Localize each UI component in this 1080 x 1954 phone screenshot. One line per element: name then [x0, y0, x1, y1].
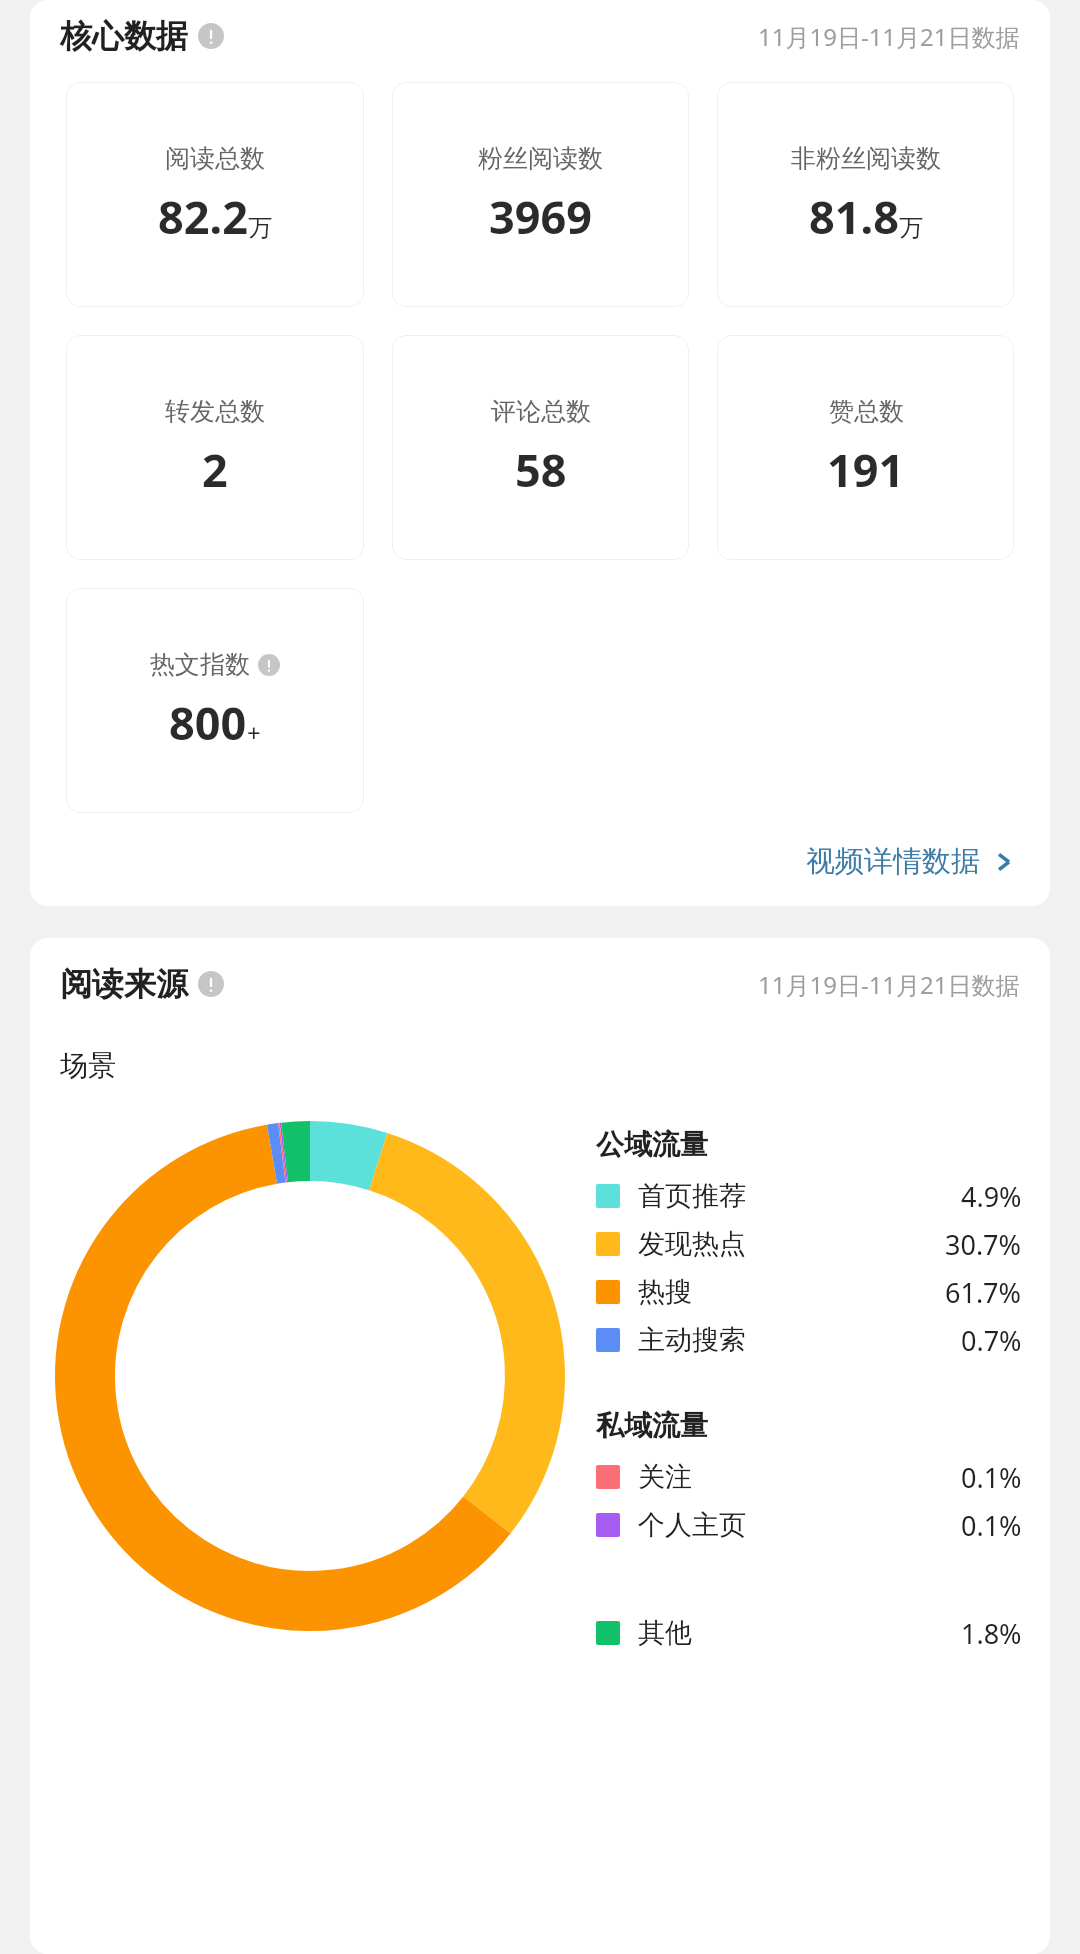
button[interactable]: 视频详情数据 — [30, 843, 1014, 880]
staticText: 阅读总数 — [165, 143, 265, 174]
other: 说明 — [258, 654, 280, 676]
staticText: + — [247, 716, 261, 749]
other: 说明 — [198, 23, 224, 49]
staticText: 11月19日-11月21日数据 — [758, 20, 1020, 53]
button[interactable]: 其他 — [596, 1609, 1050, 1657]
button[interactable]: 转发总数 — [66, 335, 364, 560]
button[interactable]: 评论总数 — [392, 335, 689, 560]
button[interactable]: 非粉丝阅读数 — [717, 82, 1014, 307]
staticText: 0.1% — [961, 1507, 1022, 1544]
staticText: 热搜 — [638, 1275, 692, 1309]
staticText: 视频详情数据 — [806, 843, 980, 880]
button[interactable]: 个人主页 — [596, 1501, 1050, 1549]
button[interactable]: 首页推荐 — [596, 1172, 1050, 1220]
button[interactable]: 粉丝阅读数 — [392, 82, 689, 307]
staticText: 其他 — [638, 1616, 692, 1650]
staticText: 核心数据 — [60, 16, 188, 56]
staticText: 30.7% — [945, 1226, 1022, 1263]
staticText: 82.2 — [158, 186, 248, 247]
staticText: 私域流量 — [596, 1408, 708, 1443]
staticText: 万 — [248, 213, 272, 243]
staticText: 赞总数 — [829, 396, 904, 427]
button[interactable]: 发现热点 — [596, 1220, 1050, 1268]
staticText: 热文指数 — [150, 649, 250, 680]
button[interactable]: 热搜 — [596, 1268, 1050, 1316]
staticText: 800 — [169, 692, 247, 753]
staticText: 0.1% — [961, 1459, 1022, 1496]
staticText: 3969 — [489, 186, 592, 247]
staticText: 场景 — [60, 1048, 116, 1083]
staticText: 万 — [899, 213, 923, 243]
staticText: 11月19日-11月21日数据 — [758, 968, 1020, 1001]
staticText: 非粉丝阅读数 — [791, 143, 941, 174]
staticText: 个人主页 — [638, 1508, 746, 1542]
staticText: 0.7% — [961, 1322, 1022, 1359]
staticText: 首页推荐 — [638, 1179, 746, 1213]
staticText: 1.8% — [961, 1615, 1022, 1652]
staticText: 81.8 — [809, 186, 899, 247]
staticText: 2 — [202, 439, 228, 500]
staticText: 发现热点 — [638, 1227, 746, 1261]
staticText: 评论总数 — [491, 396, 591, 427]
button[interactable]: 阅读总数 — [66, 82, 364, 307]
button[interactable]: 热文指数 — [66, 588, 364, 813]
staticText: 转发总数 — [165, 396, 265, 427]
button[interactable]: 赞总数 — [717, 335, 1014, 560]
staticText: 阅读来源 — [60, 964, 188, 1004]
staticText: 191 — [827, 439, 905, 500]
button[interactable]: 主动搜索 — [596, 1316, 1050, 1364]
button[interactable]: 关注 — [596, 1453, 1050, 1501]
staticText: 58 — [515, 439, 567, 500]
other: 说明 — [198, 971, 224, 997]
staticText: 4.9% — [961, 1178, 1022, 1215]
staticText: 公域流量 — [596, 1127, 708, 1162]
staticText: 61.7% — [945, 1274, 1022, 1311]
staticText: 粉丝阅读数 — [478, 143, 603, 174]
staticText: 关注 — [638, 1460, 692, 1494]
staticText: 主动搜索 — [638, 1323, 746, 1357]
